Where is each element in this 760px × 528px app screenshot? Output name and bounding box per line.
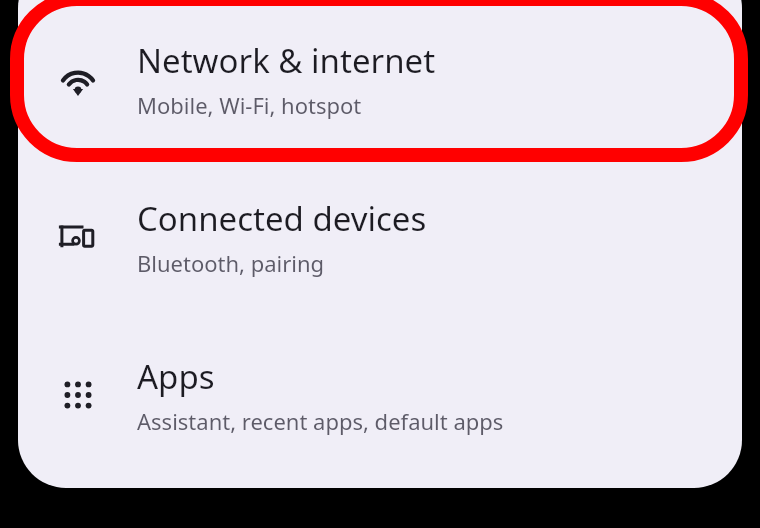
button[interactable]: Connected devices [18, 158, 742, 316]
staticText: Network & internet [137, 38, 436, 83]
staticText: Assistant, recent apps, default apps [137, 406, 504, 436]
button[interactable]: Network and internet [18, 0, 742, 158]
staticText: Connected devices [137, 196, 427, 241]
other: Apps [18, 316, 137, 474]
staticText: Mobile, Wi-Fi, hotspot [137, 90, 362, 120]
staticText: Bluetooth, pairing [137, 248, 325, 278]
staticText: Apps [137, 354, 215, 399]
other: Connected devices [18, 158, 137, 316]
button[interactable]: Apps [18, 316, 742, 474]
other: Network and internet [18, 0, 137, 158]
